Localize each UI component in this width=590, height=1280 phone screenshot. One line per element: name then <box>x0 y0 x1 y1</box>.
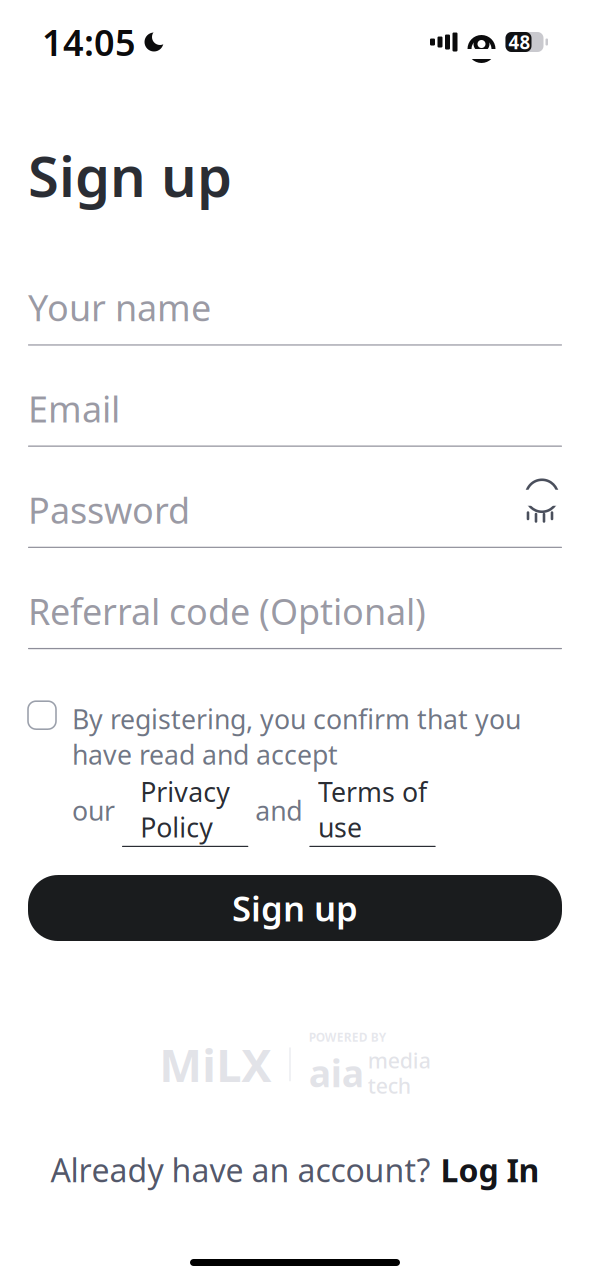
staticText: 48 <box>508 30 530 54</box>
staticText: Terms of use <box>318 774 427 845</box>
staticText: tech <box>368 1071 411 1100</box>
staticText: Password <box>28 486 190 534</box>
button[interactable]: Accept terms <box>28 701 56 729</box>
staticText: and <box>248 793 309 828</box>
button[interactable]: Privacy Policy <box>122 774 248 847</box>
staticText: Sign up <box>28 138 232 212</box>
button[interactable]: Password <box>28 473 562 574</box>
button[interactable]: Already have an account? <box>50 1148 539 1191</box>
button[interactable]: Terms of use <box>309 774 436 847</box>
button[interactable]: Your name <box>28 270 562 372</box>
staticText: Log In <box>440 1148 539 1191</box>
staticText: Your name <box>28 283 211 331</box>
staticText: Email <box>28 385 120 432</box>
staticText: 14:05 <box>42 18 136 66</box>
staticText: aia <box>309 1048 364 1098</box>
button[interactable]: Sign up <box>28 875 562 941</box>
button[interactable]: Referral code (Optional) <box>28 574 562 675</box>
staticText: Sign up <box>232 885 358 931</box>
button[interactable]: Email <box>28 372 562 473</box>
staticText: MiLX <box>159 1034 271 1094</box>
staticText: our <box>72 793 122 828</box>
staticText: POWERED BY <box>309 1029 387 1045</box>
staticText: By registering, you confirm that you hav… <box>72 701 521 772</box>
staticText: Referral code (Optional) <box>28 587 426 635</box>
staticText: media <box>368 1046 431 1074</box>
staticText: Privacy Policy <box>140 774 230 845</box>
staticText: Already have an account? <box>50 1148 430 1191</box>
